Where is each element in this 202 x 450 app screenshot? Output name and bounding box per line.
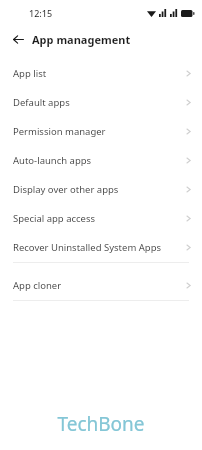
button[interactable]: Permission manager [0, 117, 202, 146]
staticText: TechBone [57, 411, 145, 437]
button[interactable]: Default apps [0, 88, 202, 117]
button[interactable]: Back [8, 29, 28, 49]
button[interactable]: App list [0, 59, 202, 88]
staticText: Recover Uninstalled System Apps [13, 241, 184, 254]
button[interactable]: Auto-launch apps [0, 146, 202, 175]
staticText: Auto-launch apps [13, 154, 184, 167]
staticText: Display over other apps [13, 183, 184, 196]
staticText: Special app access [13, 212, 184, 225]
staticText: App cloner [13, 279, 184, 292]
staticText: Default apps [13, 96, 184, 109]
button[interactable]: App cloner [0, 271, 202, 300]
staticText: App management [32, 32, 131, 47]
staticText: Permission manager [13, 125, 184, 138]
staticText: 12:15 [29, 7, 53, 19]
button[interactable]: Recover Uninstalled System Apps [0, 233, 202, 262]
staticText: App list [13, 67, 184, 80]
button[interactable]: Special app access [0, 204, 202, 233]
button[interactable]: Display over other apps [0, 175, 202, 204]
